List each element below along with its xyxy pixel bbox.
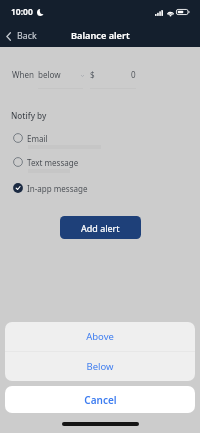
staticText: Notify by	[11, 110, 47, 121]
button[interactable]: In-app message	[0, 180, 200, 204]
button[interactable]: Cancel	[5, 386, 195, 413]
staticText: Above	[86, 330, 114, 343]
staticText: Text message	[27, 157, 79, 168]
staticText: below	[38, 69, 61, 80]
staticText: In-app message	[27, 183, 88, 194]
button[interactable]: Text message	[0, 154, 200, 178]
staticText: When	[12, 69, 34, 80]
staticText: 10:00	[11, 6, 33, 18]
button[interactable]: Back	[0, 27, 45, 45]
staticText: Email	[27, 133, 48, 144]
button[interactable]: Add alert	[60, 216, 141, 239]
staticText: $	[90, 69, 95, 80]
staticText: Cancel	[84, 393, 117, 407]
button[interactable]: $	[90, 66, 136, 89]
staticText: Back	[17, 30, 37, 42]
staticText: Below	[86, 360, 114, 373]
staticText: 0	[131, 69, 136, 80]
staticText: Balance alert	[71, 29, 130, 42]
button[interactable]: Above	[5, 322, 195, 351]
button[interactable]: below	[38, 66, 83, 89]
button[interactable]: Below	[5, 352, 195, 381]
staticText: Add alert	[81, 222, 120, 234]
button[interactable]: Email	[0, 130, 200, 154]
